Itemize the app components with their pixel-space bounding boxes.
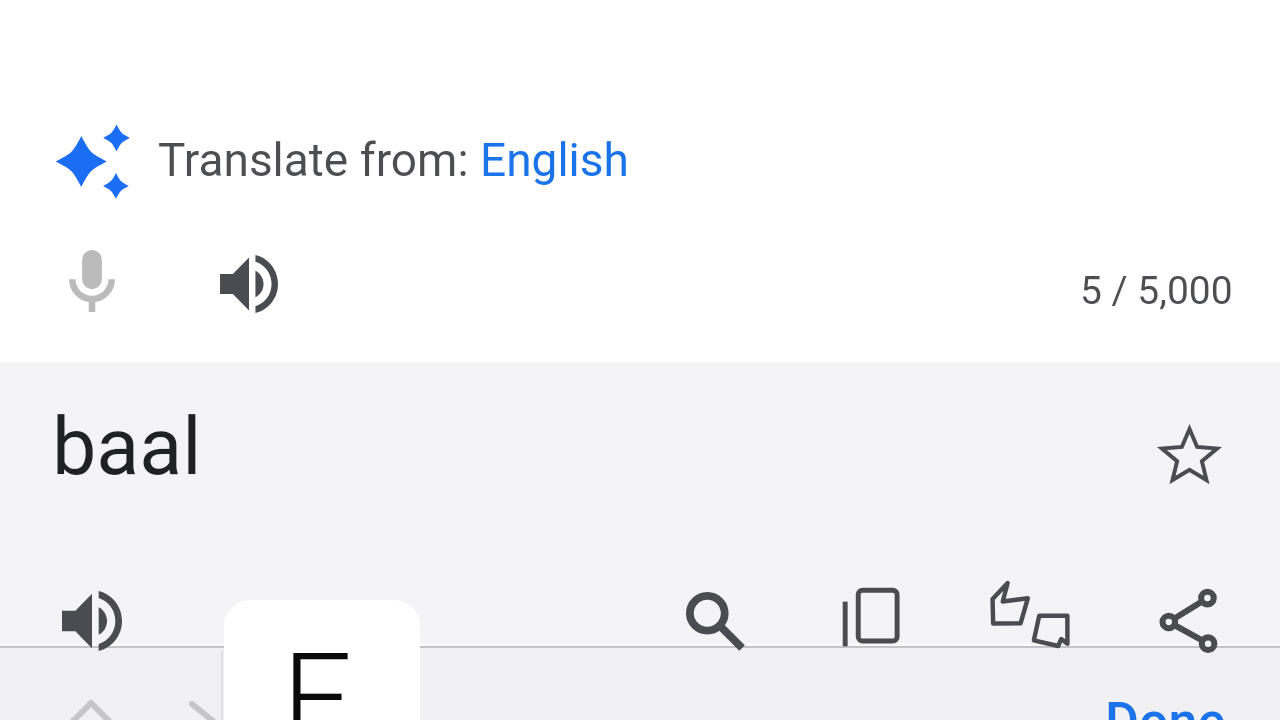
button[interactable]: Share bbox=[1145, 576, 1233, 664]
button[interactable]: Listen bbox=[48, 577, 136, 665]
button[interactable]: Shift bbox=[70, 700, 112, 720]
button[interactable]: Done bbox=[1105, 691, 1226, 720]
staticText: Translate from: bbox=[158, 133, 480, 187]
button[interactable]: F bbox=[224, 600, 420, 720]
button[interactable]: Microphone bbox=[48, 237, 136, 325]
button[interactable]: Search bbox=[672, 578, 760, 666]
button[interactable]: Listen bbox=[205, 240, 293, 328]
staticText: F bbox=[282, 626, 352, 720]
staticText: 5 / 5,000 bbox=[1080, 268, 1233, 314]
button[interactable]: Copy bbox=[827, 575, 915, 663]
button[interactable]: Rate this translation bbox=[986, 570, 1074, 658]
staticText: baal bbox=[52, 401, 202, 494]
staticText: English bbox=[480, 133, 629, 187]
button[interactable]: Save translation bbox=[1144, 409, 1234, 499]
button[interactable]: Translate from: bbox=[52, 117, 633, 203]
